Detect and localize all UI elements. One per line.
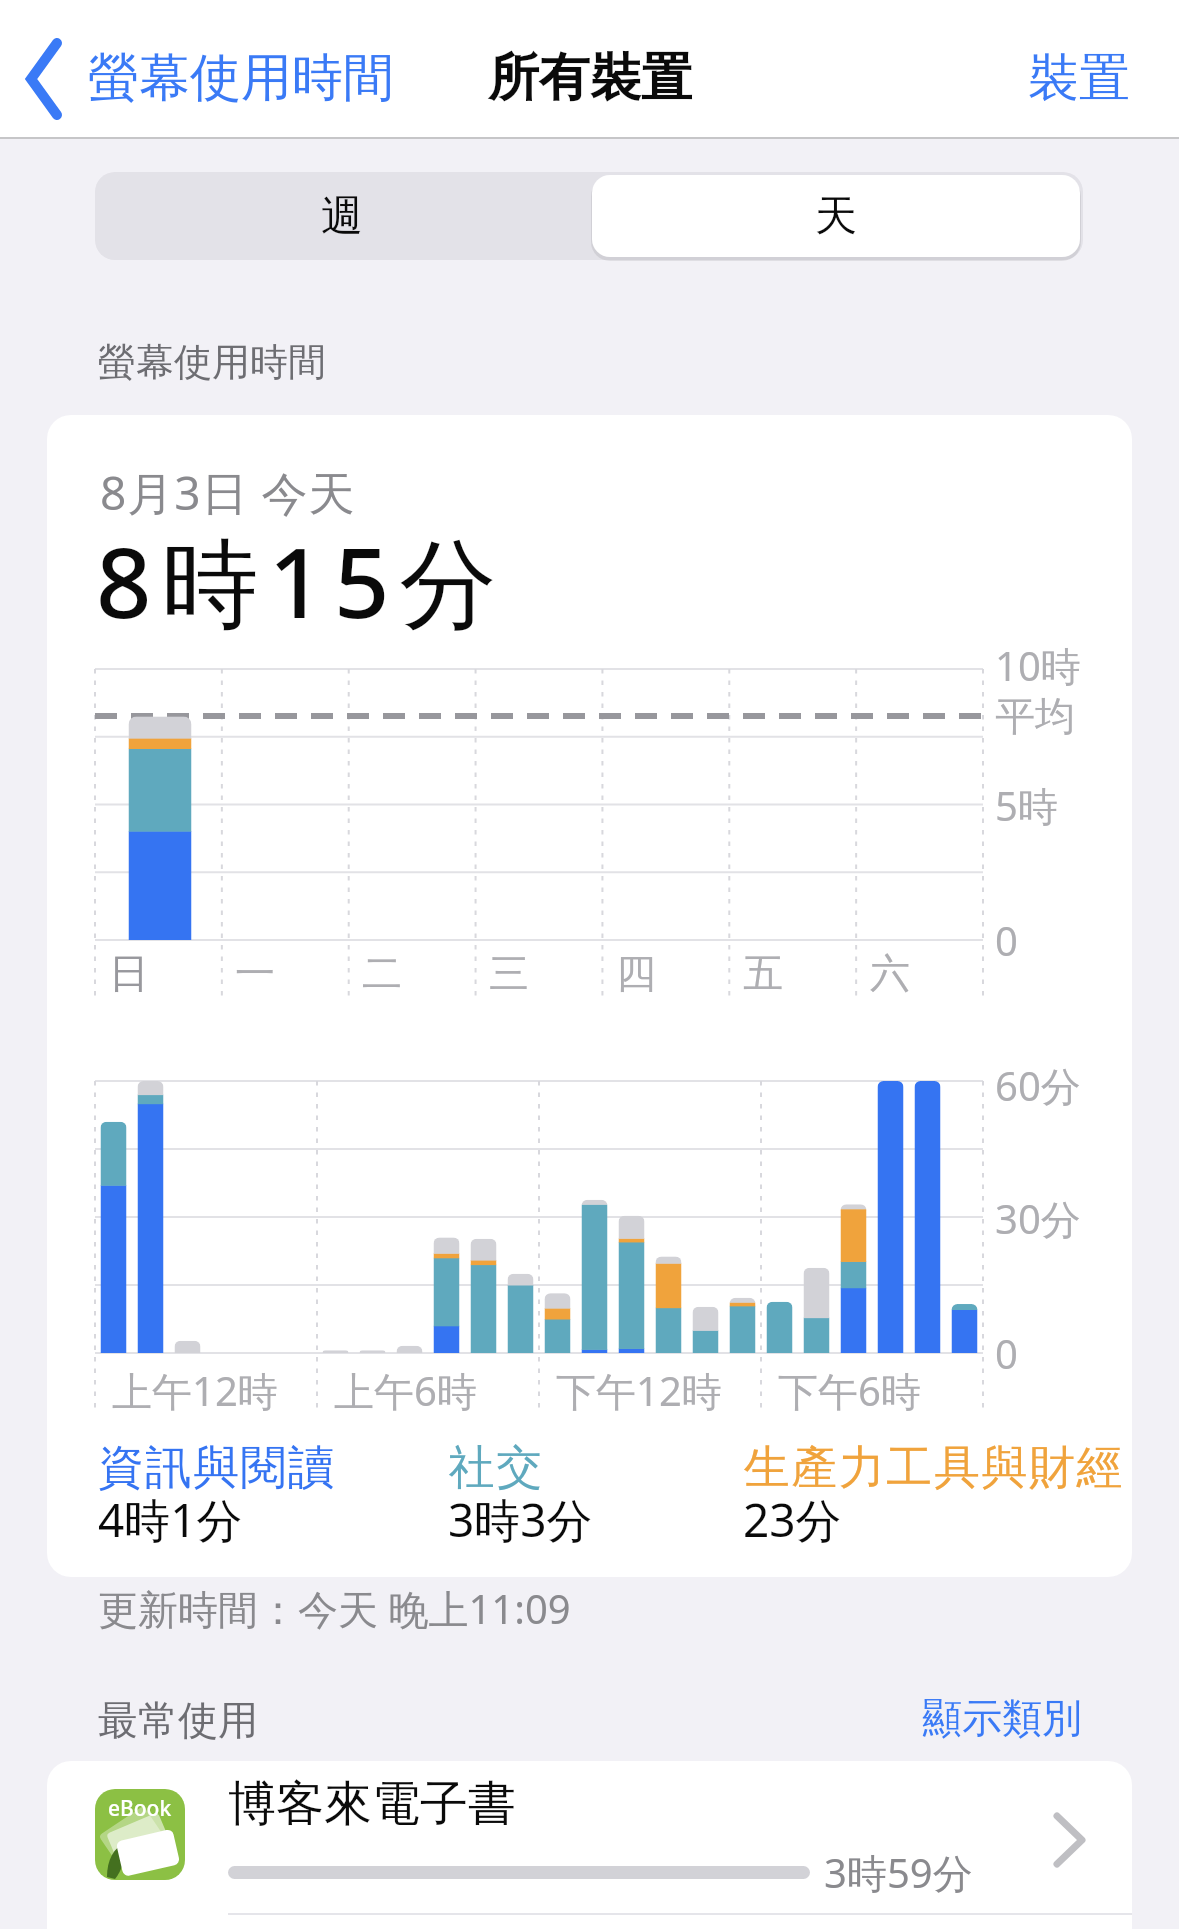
staticText: 日	[109, 948, 149, 998]
staticText: 3時59分	[824, 1845, 973, 1900]
staticText: 更新時間：今天 晚上11:09	[98, 1581, 571, 1636]
staticText: 社交	[448, 1439, 543, 1497]
staticText: 二	[362, 948, 402, 998]
staticText: 博客來電子書	[228, 1774, 516, 1834]
staticText: 三	[489, 948, 529, 998]
button[interactable]: 顯示類別	[872, 1683, 1082, 1753]
staticText: 最常使用	[98, 1695, 258, 1745]
staticText: 8月3日 今天	[100, 461, 356, 524]
staticText: 5時	[995, 778, 1058, 833]
staticText: 五	[743, 948, 783, 998]
staticText: 一	[235, 948, 275, 998]
staticText: 30分	[995, 1191, 1081, 1246]
staticText: 週	[321, 190, 363, 243]
staticText: 上午12時	[112, 1363, 278, 1418]
staticText: 平均	[995, 691, 1075, 741]
button[interactable]	[95, 172, 589, 260]
staticText: 3時3分	[448, 1488, 593, 1551]
staticText: 資訊與閱讀	[98, 1439, 336, 1497]
staticText: 上午6時	[334, 1363, 477, 1418]
button[interactable]	[47, 1761, 1132, 1929]
staticText: 60分	[995, 1058, 1081, 1113]
staticText: 0	[995, 913, 1018, 967]
button[interactable]: 裝置	[955, 30, 1130, 125]
staticText: 四	[616, 948, 656, 998]
staticText: 六	[870, 948, 910, 998]
staticText: 螢幕使用時間	[98, 338, 326, 386]
staticText: 下午12時	[556, 1363, 722, 1418]
staticText: 0	[995, 1326, 1018, 1380]
button[interactable]: 螢幕使用時間	[10, 30, 410, 125]
staticText: 裝置	[1028, 46, 1130, 110]
staticText: 4時1分	[98, 1488, 243, 1551]
staticText: 8時15分	[96, 514, 507, 646]
staticText: eBook	[108, 1794, 172, 1823]
staticText: 顯示類別	[922, 1693, 1082, 1743]
staticText: 下午6時	[778, 1363, 921, 1418]
staticText: 所有裝置	[488, 46, 692, 110]
staticText: 螢幕使用時間	[88, 46, 394, 110]
staticText: 23分	[743, 1488, 842, 1551]
button[interactable]	[592, 175, 1080, 257]
staticText: 生產力工具與財經	[743, 1439, 1123, 1497]
staticText: 天	[815, 190, 857, 243]
staticText: 10時	[995, 638, 1081, 693]
